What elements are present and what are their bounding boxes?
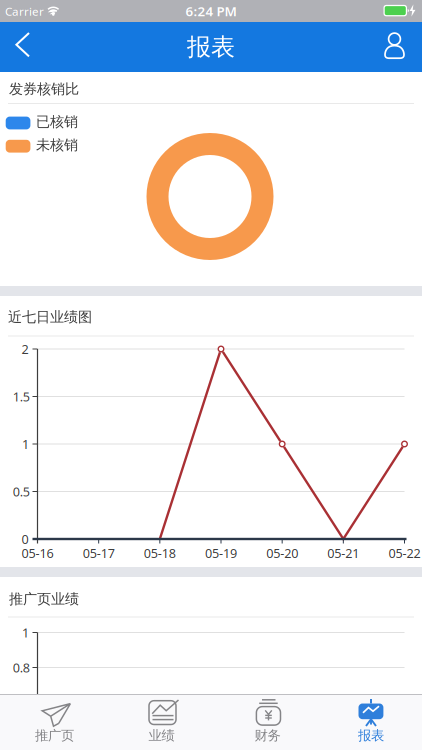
staticText: 未核销 <box>36 136 78 154</box>
button[interactable]: 推广页 <box>3 694 108 750</box>
staticText: 发券核销比 <box>9 80 79 98</box>
staticText: Carrier <box>5 3 44 19</box>
staticText: 1 <box>22 435 29 453</box>
staticText: 财务 <box>254 727 280 744</box>
button[interactable]: Back <box>0 22 44 72</box>
staticText: 2 <box>21 340 28 358</box>
staticText: 6:24 PM <box>185 2 236 20</box>
staticText: 05-18 <box>144 544 176 562</box>
staticText: 推广页 <box>35 727 74 744</box>
staticText: 1 <box>22 624 29 641</box>
staticText: 05-21 <box>327 544 359 562</box>
staticText: 0.5 <box>13 483 30 500</box>
staticText: 05-19 <box>205 544 237 562</box>
staticText: 报表 <box>358 727 384 744</box>
button[interactable]: 财务 <box>215 694 320 750</box>
button[interactable]: Profile <box>370 22 414 72</box>
staticText: 报表 <box>187 32 235 62</box>
staticText: 0.8 <box>13 659 30 676</box>
staticText: 1.5 <box>13 388 30 405</box>
staticText: 05-16 <box>21 544 53 562</box>
staticText: 05-17 <box>83 544 115 562</box>
button[interactable]: 业绩 <box>109 694 214 750</box>
button[interactable]: 报表 <box>321 694 422 750</box>
staticText: 05-20 <box>266 544 298 562</box>
staticText: 已核销 <box>36 113 78 131</box>
staticText: 推广页业绩 <box>9 590 79 608</box>
staticText: 05-22 <box>388 544 420 562</box>
staticText: 0 <box>21 530 28 548</box>
staticText: 近七日业绩图 <box>8 308 92 326</box>
staticText: 业绩 <box>148 727 174 744</box>
